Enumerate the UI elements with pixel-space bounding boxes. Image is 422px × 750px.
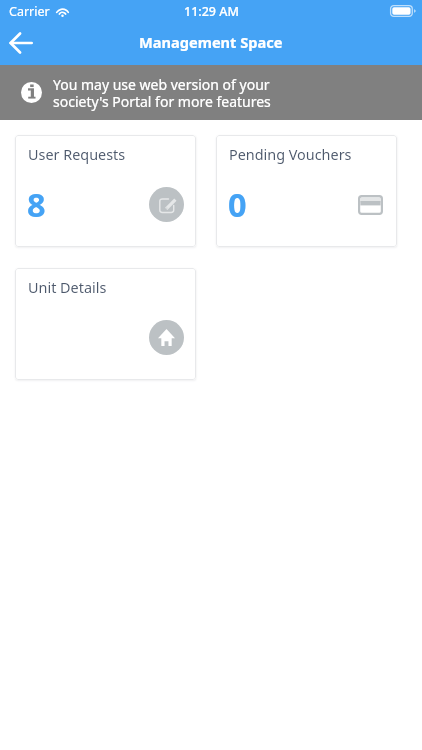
staticText: 0 bbox=[228, 182, 247, 226]
staticText: You may use web version of your society'… bbox=[53, 75, 271, 111]
staticText: Carrier bbox=[9, 3, 50, 20]
button[interactable]: Create request bbox=[149, 187, 184, 222]
staticText: 8 bbox=[27, 182, 46, 226]
button[interactable]: Back bbox=[0, 22, 42, 65]
button[interactable]: Pending vouchers bbox=[350, 187, 385, 222]
staticText: Unit Details bbox=[28, 278, 107, 298]
staticText: Pending Vouchers bbox=[229, 145, 352, 165]
button[interactable]: Unit Details bbox=[15, 268, 196, 380]
staticText: Management Space bbox=[139, 32, 283, 52]
button[interactable]: Unit details bbox=[149, 320, 184, 355]
staticText: User Requests bbox=[28, 145, 126, 165]
button[interactable]: Pending Vouchers bbox=[216, 135, 397, 247]
staticText: 11:29 AM bbox=[184, 3, 239, 20]
button[interactable]: User Requests bbox=[15, 135, 196, 247]
